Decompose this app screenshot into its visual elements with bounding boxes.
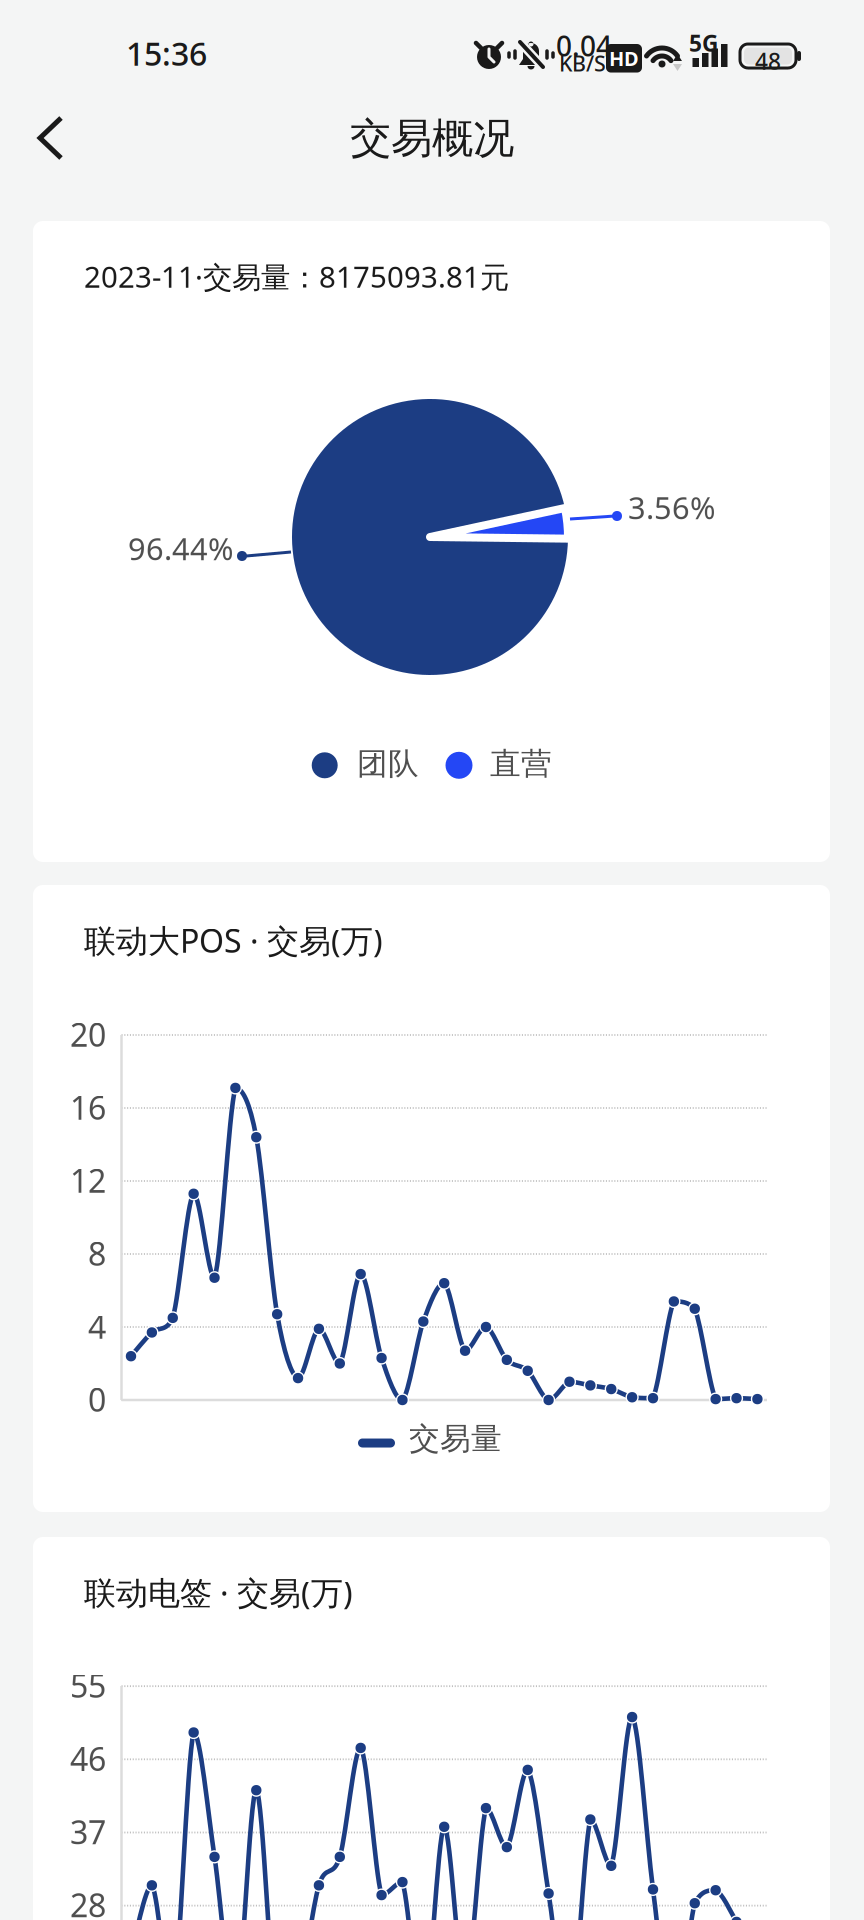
staticText: 3.56% — [628, 487, 715, 528]
staticText: 0 — [88, 1378, 106, 1420]
staticText: HD — [609, 45, 639, 72]
staticText: KB/S — [559, 49, 606, 77]
staticText: 交易概况 — [350, 113, 514, 164]
staticText: 团队 — [357, 745, 419, 783]
staticText: 46 — [70, 1737, 106, 1780]
staticText: 交易量 — [409, 1420, 502, 1458]
staticText: 2023-11·交易量：8175093.81元 — [84, 257, 509, 296]
staticText: 12 — [70, 1159, 106, 1201]
staticText: 0.04 — [556, 27, 612, 64]
staticText: 20 — [70, 1013, 106, 1055]
staticText: 直营 — [490, 745, 552, 783]
staticText: 5G — [689, 28, 718, 58]
staticText: 16 — [70, 1086, 106, 1128]
staticText: 37 — [70, 1810, 106, 1853]
button[interactable]: Back — [20, 98, 108, 178]
staticText: 48 — [755, 46, 781, 76]
staticText: 联动大POS · 交易(万) — [84, 919, 383, 961]
staticText: 28 — [70, 1884, 106, 1920]
staticText: 8 — [88, 1232, 106, 1274]
staticText: 4 — [88, 1305, 106, 1347]
staticText: 联动电签 · 交易(万) — [84, 1571, 353, 1613]
staticText: 55 — [70, 1664, 106, 1707]
staticText: 96.44% — [128, 528, 233, 569]
staticText: 15:36 — [126, 32, 207, 74]
